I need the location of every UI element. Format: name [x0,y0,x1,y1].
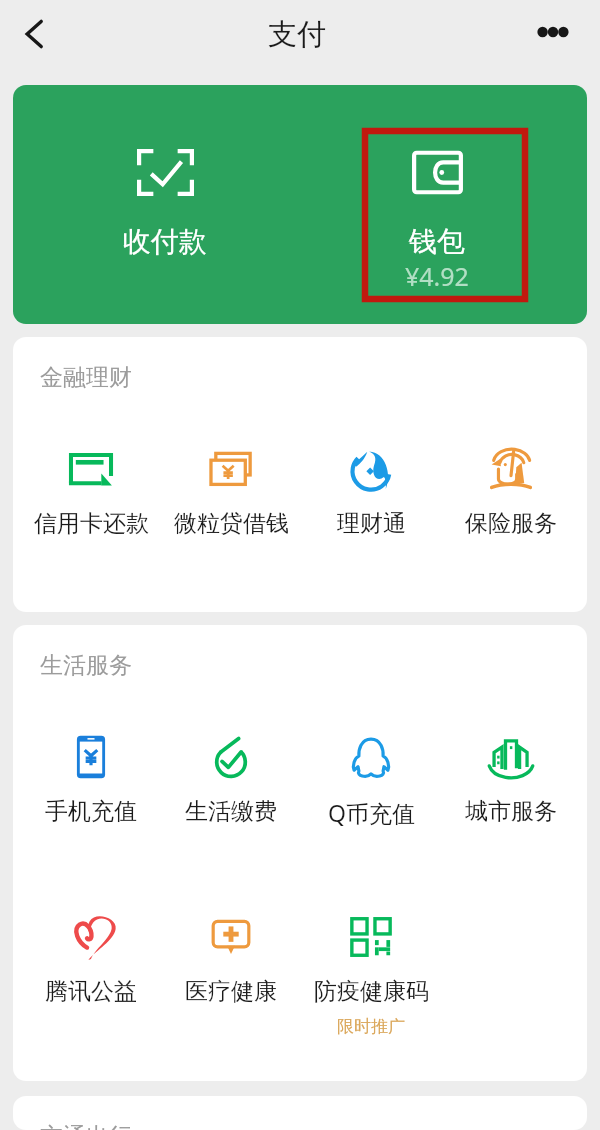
staticText: ¥4.92 [405,259,469,293]
staticText: 理财通 [337,509,406,538]
staticText: 保险服务 [465,509,557,538]
staticText: 钱包 [409,224,465,259]
staticText: 收付款 [123,224,207,259]
button[interactable]: 腾讯公益 [21,915,161,1006]
button[interactable]: 收付款 [13,85,300,324]
button[interactable]: 理财通 [301,447,441,538]
staticText: 手机充值 [45,797,137,826]
button[interactable]: 信用卡还款 [21,447,161,538]
staticText: 金融理财 [40,363,132,392]
button[interactable]: 防疫健康码 [301,915,441,1037]
button[interactable]: 钱包 [300,85,587,324]
staticText: 生活服务 [40,651,132,680]
staticText: 交通出行 [40,1122,132,1130]
staticText: 防疫健康码 [314,977,429,1006]
staticText: 微粒贷借钱 [174,509,289,538]
staticText: 支付 [268,16,326,53]
button[interactable]: 生活缴费 [161,735,301,826]
staticText: 生活缴费 [185,797,277,826]
button[interactable]: Q币充值 [301,735,441,828]
button[interactable]: 城市服务 [441,735,581,826]
button[interactable]: 保险服务 [441,447,581,538]
button[interactable]: 医疗健康 [161,915,301,1006]
staticText: 医疗健康 [185,977,277,1006]
button[interactable]: More options [523,2,583,62]
button[interactable]: 手机充值 [21,735,161,826]
staticText: 腾讯公益 [45,977,137,1006]
staticText: 限时推广 [337,1016,405,1037]
button[interactable]: Back [4,4,64,64]
staticText: Q币充值 [328,797,415,828]
staticText: 信用卡还款 [34,509,149,538]
staticText: 城市服务 [465,797,557,826]
button[interactable]: 微粒贷借钱 [161,447,301,538]
